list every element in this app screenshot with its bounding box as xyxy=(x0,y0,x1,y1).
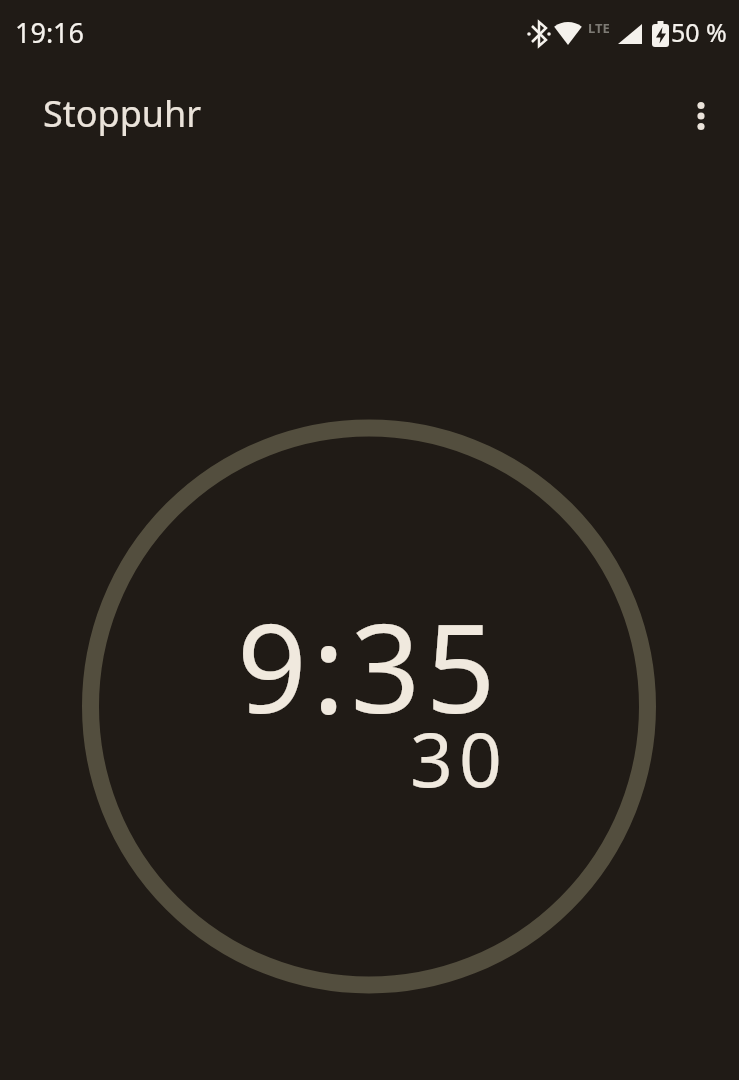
button[interactable] xyxy=(677,92,725,140)
staticText: 50 % xyxy=(671,15,727,49)
staticText: LTE xyxy=(588,19,610,37)
staticText: 9:35 xyxy=(237,583,502,749)
staticText: Stoppuhr xyxy=(43,89,202,138)
staticText: 30 xyxy=(410,707,508,809)
staticText: 19:16 xyxy=(15,14,85,51)
